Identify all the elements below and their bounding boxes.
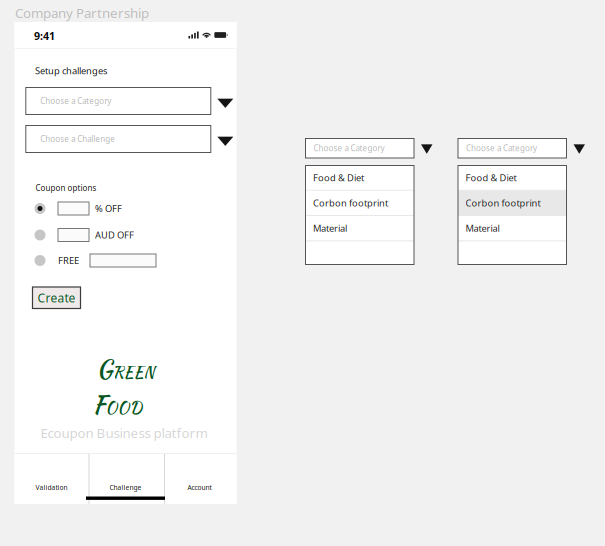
staticText: Setup challenges <box>35 64 107 77</box>
staticText: Material <box>313 222 347 234</box>
button[interactable]: Account <box>162 453 236 504</box>
staticText: 9:41 <box>34 29 55 43</box>
button[interactable]: Choose a Challenge <box>26 125 234 152</box>
staticText: Coupon options <box>35 182 96 193</box>
button[interactable]: Challenge <box>88 453 162 504</box>
button[interactable]: Material <box>458 216 566 240</box>
button[interactable]: AUD OFF <box>34 227 174 242</box>
staticText: Choose a Challenge <box>40 134 115 144</box>
staticText: Material <box>465 222 499 234</box>
staticText: Challenge <box>109 483 141 492</box>
button[interactable]: FREE <box>34 253 174 268</box>
staticText: Company Partnership <box>15 4 149 22</box>
button[interactable]: Food & Diet <box>458 165 566 190</box>
button[interactable]: Corbon footprint <box>458 191 566 215</box>
staticText: AUD OFF <box>95 229 134 241</box>
button[interactable]: % OFF <box>34 201 174 216</box>
staticText: Create <box>37 290 75 306</box>
button[interactable]: Create <box>32 287 80 308</box>
staticText: F <box>92 388 105 423</box>
staticText: Food & Diet <box>465 171 516 184</box>
staticText: Corbon footprint <box>313 197 388 209</box>
staticText: Choose a Category <box>466 143 537 153</box>
button[interactable]: Choose a Category <box>458 138 586 158</box>
button[interactable]: Material <box>305 216 414 240</box>
button[interactable]: Food & Diet <box>305 165 414 190</box>
staticText: OOD <box>105 396 141 420</box>
button[interactable]: Validation <box>14 453 88 504</box>
staticText: % OFF <box>95 202 122 215</box>
button[interactable]: Choose a Category <box>26 87 234 114</box>
staticText: Choose a Category <box>40 96 111 106</box>
staticText: REEN <box>112 361 154 384</box>
staticText: Choose a Category <box>313 143 384 153</box>
staticText: Validation <box>35 483 67 492</box>
button[interactable]: Corbon footprint <box>305 191 414 215</box>
staticText: Corbon footprint <box>465 197 540 209</box>
staticText: Ecoupon Business platform <box>40 424 207 442</box>
staticText: Food & Diet <box>313 171 364 184</box>
staticText: FREE <box>58 254 79 267</box>
staticText: G <box>96 352 112 387</box>
button[interactable]: Choose a Category <box>305 138 433 158</box>
staticText: Account <box>187 483 211 492</box>
